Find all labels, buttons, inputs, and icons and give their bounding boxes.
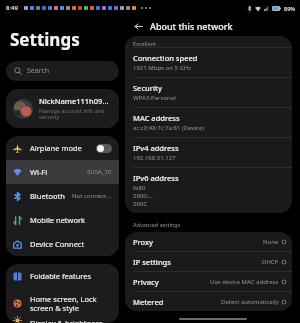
staticText: Use device MAC address <box>210 278 279 286</box>
button[interactable]: Foldable features <box>6 264 119 288</box>
staticText: IP settings <box>133 257 262 267</box>
staticText: Home screen, Lock screen & style <box>30 294 112 313</box>
button[interactable]: Display & brightness <box>6 318 119 323</box>
staticText: NickName111h094… <box>39 96 112 106</box>
button[interactable]: Wi-Fi <box>6 160 119 184</box>
staticText: IPv6 address <box>133 173 179 183</box>
staticText: ac:c0:48:7c:7a:81 (Device) <box>133 124 205 132</box>
staticText: 1921 Mbps on 5 GHz <box>133 64 192 72</box>
button[interactable]: Connection speed <box>125 48 292 77</box>
staticText: Privacy <box>133 277 210 287</box>
staticText: Advanced settings <box>133 221 181 228</box>
button[interactable]: Home screen, Lock screen & style <box>6 288 119 318</box>
staticText: SUSA_70 <box>87 168 112 176</box>
button[interactable]: IPv6 address <box>125 168 292 213</box>
staticText: Connection speed <box>133 53 198 63</box>
staticText: Bluetooth <box>30 191 72 201</box>
staticText: About this network <box>150 20 233 32</box>
button[interactable]: Security <box>125 78 292 107</box>
staticText: Not connect… <box>72 192 112 200</box>
staticText: MAC address <box>133 113 180 123</box>
button[interactable]: Airplane mode <box>6 136 119 160</box>
staticText: Device Connect <box>30 239 112 249</box>
button[interactable]: IPv4 address <box>125 138 292 167</box>
staticText: DHCP <box>262 258 279 266</box>
staticText: Security <box>133 83 162 93</box>
button[interactable]: NickName111h094… <box>6 89 119 128</box>
staticText: IPv4 address <box>133 143 179 153</box>
button[interactable] <box>96 144 112 153</box>
staticText: Proxy <box>133 237 263 247</box>
staticText: 89% <box>284 5 295 12</box>
staticText: Metered <box>133 297 221 307</box>
button[interactable]: Search <box>6 61 119 81</box>
button[interactable]: Mobile network <box>6 208 119 232</box>
staticText: fe80 2600:… 260C <box>133 184 154 208</box>
staticText: Search <box>27 66 50 76</box>
button[interactable]: Device Connect <box>6 232 119 256</box>
button[interactable]: MAC address <box>125 108 292 137</box>
staticText: Wi-Fi <box>30 167 87 177</box>
staticText: Detect automatically <box>221 298 279 306</box>
staticText: Foldable features <box>30 271 112 281</box>
button[interactable]: Privacy <box>125 272 292 291</box>
button[interactable]: Metered <box>125 292 292 311</box>
staticText: None <box>263 238 279 246</box>
staticText: Mobile network <box>30 215 112 225</box>
staticText: 192.168.51.127 <box>133 154 176 162</box>
button[interactable]: IP settings <box>125 252 292 271</box>
staticText: Display & brightness <box>30 318 112 323</box>
staticText: Settings <box>10 28 80 51</box>
button[interactable]: Proxy <box>125 232 292 251</box>
staticText: Manage account info and security <box>39 107 112 121</box>
button[interactable]: Bluetooth <box>6 184 119 208</box>
staticText: 8:49 <box>6 4 18 12</box>
staticText: Airplane mode <box>30 143 96 153</box>
staticText: WPA3-Personal <box>133 94 176 102</box>
staticText: Excellent <box>133 40 156 47</box>
button[interactable]: Back <box>131 19 145 33</box>
